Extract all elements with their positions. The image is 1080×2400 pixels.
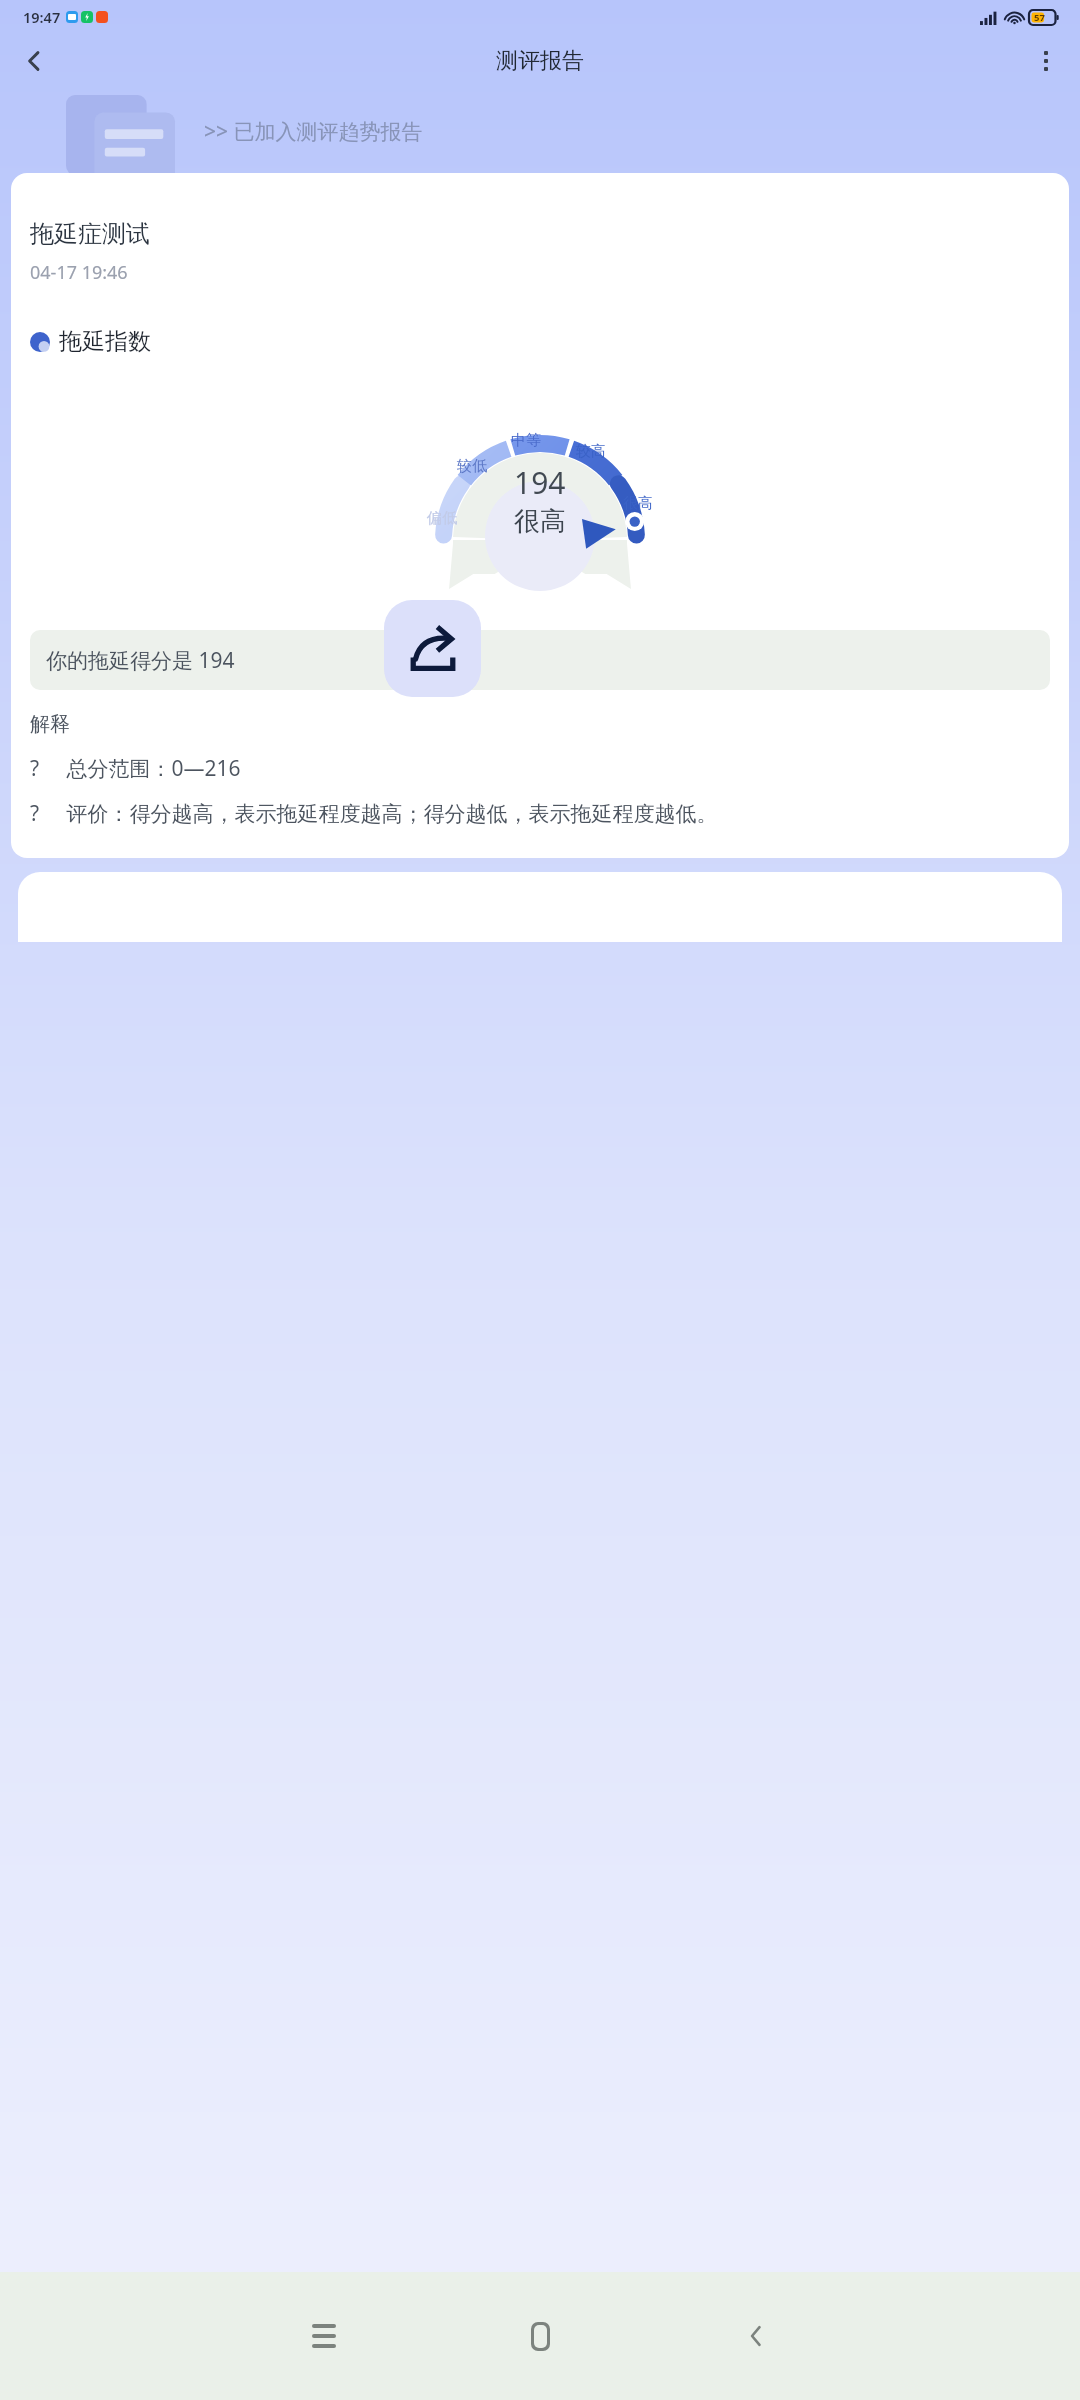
staticText: 04-17 19:46	[30, 260, 128, 285]
staticText: 解释	[30, 712, 70, 737]
staticText: 拖延症测试	[30, 219, 150, 249]
staticText: 19:47	[23, 7, 61, 27]
staticText: 中等	[511, 431, 541, 450]
staticText: ? 评价：得分越高，表示拖延程度越高；得分越低，表示拖延程度越低。	[30, 799, 718, 828]
button[interactable]: Share	[384, 600, 481, 697]
staticText: 较低	[457, 457, 487, 476]
staticText: 拖延指数	[59, 327, 151, 356]
button[interactable]: Recent apps	[216, 2272, 432, 2400]
staticText: 你的拖延得分是 194	[46, 646, 235, 675]
staticText: 57	[1034, 11, 1045, 24]
staticText: ? 总分范围：0—216	[30, 754, 241, 783]
button[interactable]: Home	[432, 2272, 648, 2400]
staticText: 偏低	[427, 509, 457, 528]
staticText: 很高	[623, 494, 653, 513]
staticText: 很高	[514, 505, 566, 538]
button[interactable]: Back	[648, 2272, 864, 2400]
staticText: 194	[514, 462, 566, 503]
staticText: 测评报告	[496, 47, 584, 75]
button[interactable]: More options	[1022, 37, 1070, 85]
button[interactable]: Back	[10, 37, 58, 85]
staticText: >> 已加入测评趋势报告	[204, 117, 423, 146]
staticText: 较高	[576, 442, 606, 461]
button[interactable]: >> 已加入测评趋势报告	[58, 89, 1080, 173]
